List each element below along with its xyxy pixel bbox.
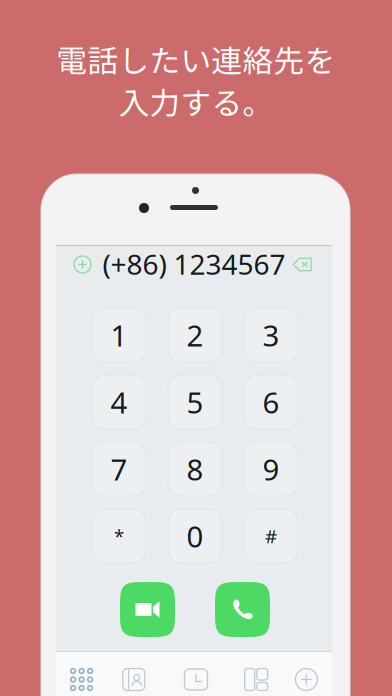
staticText: 5 bbox=[186, 382, 203, 421]
staticText: 1 bbox=[110, 315, 127, 354]
button[interactable]: 3 bbox=[244, 308, 298, 362]
staticText: 4 bbox=[110, 382, 127, 421]
button[interactable]: Call bbox=[215, 582, 270, 637]
button[interactable]: 8 bbox=[168, 442, 222, 496]
staticText: 7 bbox=[110, 449, 127, 488]
button[interactable]: 7 bbox=[92, 442, 146, 496]
button[interactable]: Add number bbox=[74, 256, 91, 273]
button[interactable]: Keypad bbox=[56, 652, 111, 696]
button[interactable]: Delete bbox=[292, 257, 312, 272]
staticText: 8 bbox=[186, 449, 203, 488]
button[interactable]: 6 bbox=[244, 375, 298, 429]
staticText: 6 bbox=[262, 382, 279, 421]
staticText: 3 bbox=[262, 315, 279, 354]
button[interactable]: * bbox=[92, 509, 146, 563]
staticText: (+86) 1234567 bbox=[102, 245, 285, 283]
button[interactable]: 2 bbox=[168, 308, 222, 362]
staticText: 9 bbox=[262, 449, 279, 488]
staticText: 電話したい連絡先を bbox=[56, 37, 335, 81]
staticText: 入力する。 bbox=[118, 79, 273, 123]
button[interactable]: 4 bbox=[92, 375, 146, 429]
button[interactable]: Video call bbox=[120, 582, 175, 637]
button[interactable]: Add bbox=[277, 652, 332, 696]
staticText: 2 bbox=[186, 315, 203, 354]
button[interactable]: Recents bbox=[166, 652, 222, 696]
button[interactable]: 5 bbox=[168, 375, 222, 429]
staticText: # bbox=[265, 524, 277, 548]
button[interactable]: # bbox=[244, 509, 298, 563]
button[interactable]: 1 bbox=[92, 308, 146, 362]
button[interactable]: Panels bbox=[222, 652, 277, 696]
staticText: * bbox=[114, 524, 124, 548]
button[interactable]: 9 bbox=[244, 442, 298, 496]
button[interactable]: Contacts bbox=[111, 652, 166, 696]
button[interactable]: 0 bbox=[168, 509, 222, 563]
staticText: 0 bbox=[186, 516, 203, 555]
